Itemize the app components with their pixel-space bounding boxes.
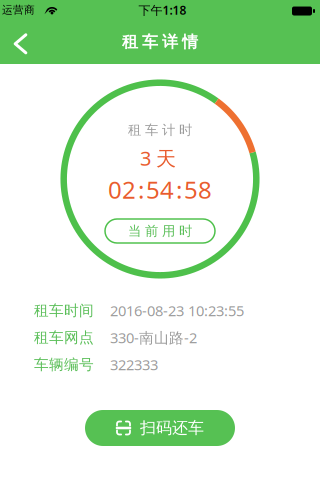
button[interactable]: 当 前 用 时 bbox=[105, 219, 215, 243]
button[interactable]: 扫码还车 bbox=[85, 410, 235, 446]
staticText: 租 车 计 时 bbox=[128, 122, 192, 138]
staticText: 下午1:18 bbox=[138, 2, 186, 18]
staticText: 扫码还车 bbox=[140, 418, 204, 438]
staticText: 322333 bbox=[110, 355, 158, 374]
staticText: 2016-08-23 10:23:55 bbox=[110, 301, 244, 320]
button[interactable]: Back bbox=[0, 20, 44, 64]
staticText: 3 天 bbox=[140, 145, 176, 171]
staticText: 运营商 bbox=[2, 3, 35, 16]
staticText: 02 : 54 : 58 bbox=[108, 174, 212, 205]
staticText: 330-南山路-2 bbox=[110, 328, 197, 347]
staticText: 租 车 详 情 bbox=[122, 32, 198, 52]
staticText: 租车时间 bbox=[34, 301, 94, 319]
staticText: 当 前 用 时 bbox=[128, 223, 192, 239]
staticText: 车辆编号 bbox=[34, 355, 94, 373]
staticText: 租车网点 bbox=[34, 328, 94, 346]
